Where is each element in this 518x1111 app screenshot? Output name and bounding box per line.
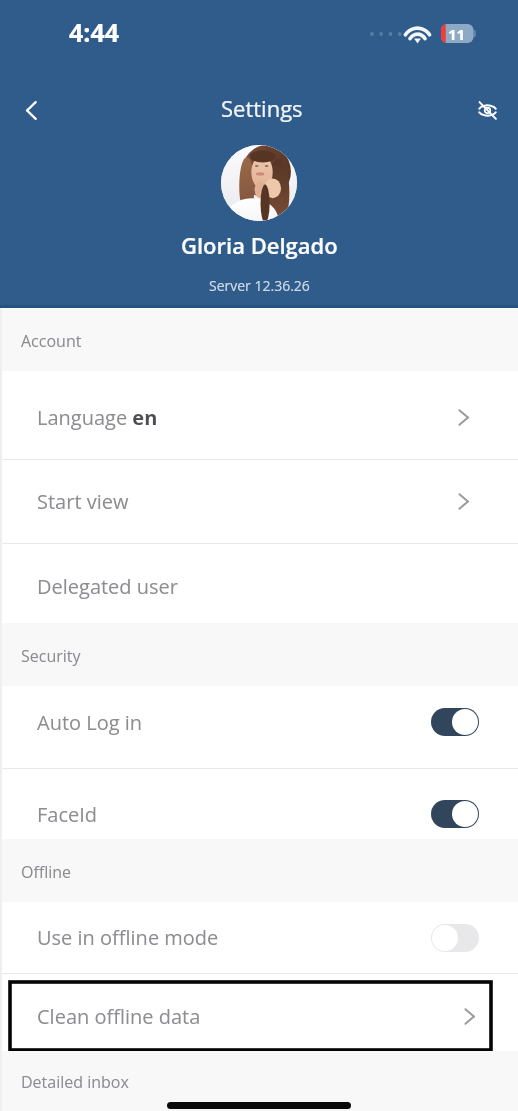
- staticText: Delegated user: [37, 573, 178, 600]
- staticText: FaceId: [37, 801, 98, 828]
- button[interactable]: Hide password: [465, 88, 509, 132]
- staticText: Account: [21, 330, 82, 352]
- button[interactable]: Delegated user: [0, 544, 518, 623]
- button[interactable]: Use in offline mode: [0, 902, 518, 973]
- staticText: Detailed inbox: [21, 1071, 129, 1093]
- button[interactable]: Off: [431, 924, 479, 952]
- button[interactable]: Language en: [0, 371, 518, 459]
- staticText: Offline: [21, 861, 72, 883]
- staticText: Gloria Delgado: [181, 230, 338, 260]
- staticText: Use in offline mode: [37, 924, 219, 951]
- staticText: Clean offline data: [37, 1003, 201, 1030]
- button[interactable]: Auto Log in: [0, 686, 518, 768]
- button[interactable]: Clean offline data: [10, 982, 491, 1050]
- staticText: Auto Log in: [37, 709, 143, 736]
- staticText: Language en: [37, 404, 158, 431]
- button[interactable]: Start view: [0, 460, 518, 543]
- staticText: Server 12.36.26: [209, 276, 310, 295]
- staticText: Security: [21, 645, 81, 667]
- staticText: 4:44: [69, 15, 120, 49]
- button[interactable]: On: [431, 708, 479, 736]
- button[interactable]: FaceId: [0, 769, 518, 839]
- button[interactable]: On: [431, 800, 479, 828]
- button[interactable]: Back: [9, 88, 53, 132]
- staticText: 11: [448, 24, 466, 43]
- staticText: Start view: [37, 488, 129, 515]
- staticText: Settings: [221, 93, 303, 123]
